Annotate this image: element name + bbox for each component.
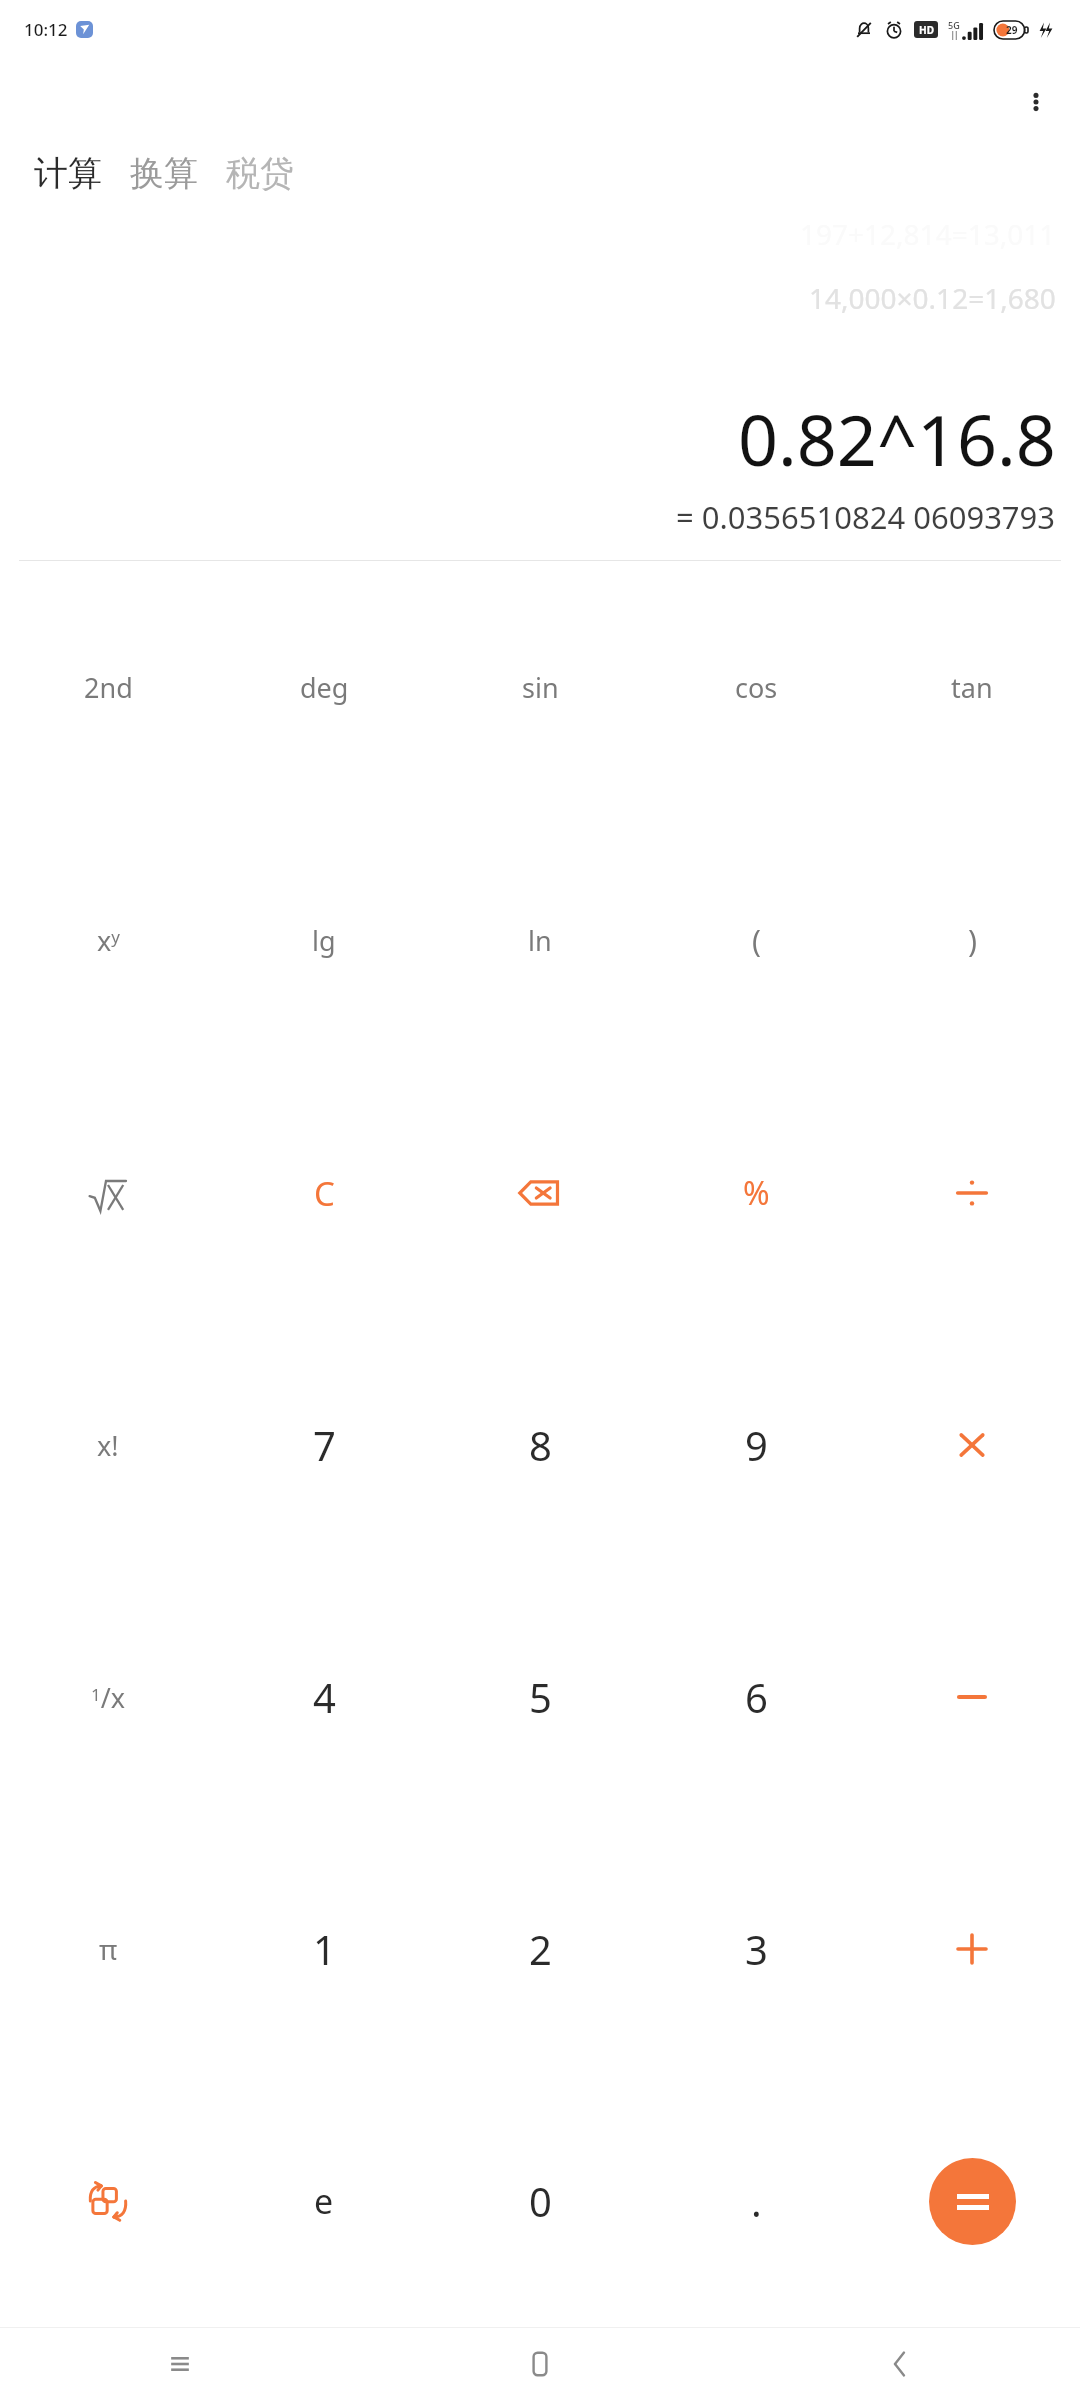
staticText: 5 — [529, 1670, 552, 1724]
button[interactable]: tan — [864, 561, 1080, 814]
button[interactable]: Home — [360, 2328, 720, 2400]
button[interactable]: Back — [720, 2328, 1080, 2400]
button[interactable]: 5 — [432, 1571, 648, 1823]
button[interactable]: ) — [864, 814, 1080, 1067]
staticText: 4 — [313, 1670, 336, 1724]
staticText: ( — [752, 920, 761, 961]
staticText: tan — [951, 669, 993, 706]
staticText: x! — [97, 1427, 119, 1464]
button[interactable]: ( — [648, 814, 864, 1067]
button[interactable] — [929, 2158, 1016, 2245]
button[interactable]: C — [216, 1067, 432, 1319]
button[interactable]: deg — [216, 561, 432, 814]
staticText: deg — [300, 669, 349, 706]
button[interactable]: 计算 — [24, 146, 112, 201]
staticText: . — [751, 2174, 762, 2228]
button[interactable]: π — [0, 1823, 216, 2075]
button[interactable]: x! — [0, 1319, 216, 1571]
button[interactable]: lg — [216, 814, 432, 1067]
button[interactable]: 2 — [432, 1823, 648, 2075]
staticText: π — [99, 1930, 118, 1968]
button[interactable]: More options — [1012, 78, 1060, 126]
staticText: 2 — [529, 1922, 552, 1976]
staticText: lg — [312, 922, 336, 959]
button[interactable]: . — [648, 2075, 864, 2327]
button[interactable]: Square root — [0, 1067, 216, 1319]
button[interactable]: 7 — [216, 1319, 432, 1571]
button[interactable]: 9 — [648, 1319, 864, 1571]
staticText: ) — [968, 920, 977, 961]
staticText: % — [743, 1171, 770, 1215]
staticText: xy — [97, 922, 120, 959]
button[interactable]: 1 — [216, 1823, 432, 2075]
button[interactable]: xy — [0, 814, 216, 1067]
staticText: 计算 — [34, 152, 102, 195]
button[interactable]: Backspace — [432, 1067, 648, 1319]
button[interactable]: Recents — [0, 2328, 360, 2400]
staticText: HD — [919, 23, 934, 37]
button[interactable]: sin — [432, 561, 648, 814]
staticText: 8 — [529, 1418, 552, 1472]
button[interactable]: % — [648, 1067, 864, 1319]
staticText: 10:12 — [24, 18, 68, 41]
button[interactable]: Add — [864, 1823, 1080, 2075]
button[interactable]: Equals — [864, 2075, 1080, 2327]
button[interactable]: Subtract — [864, 1571, 1080, 1823]
staticText: 0.82^16.8 — [738, 391, 1056, 486]
staticText: e — [314, 2178, 334, 2224]
staticText: 14,000×0.12=1,680 — [809, 279, 1056, 317]
staticText: 2nd — [84, 669, 133, 706]
staticText: 0 — [529, 2174, 552, 2228]
button[interactable]: 税贷 — [216, 146, 304, 201]
button[interactable]: ln — [432, 814, 648, 1067]
staticText: C — [314, 1171, 335, 1216]
staticText: = 0.0356510824 06093793 — [676, 496, 1056, 538]
staticText: 1/x — [91, 1679, 126, 1716]
staticText: 税贷 — [226, 152, 294, 195]
staticText: 1 — [313, 1922, 336, 1976]
button[interactable]: 6 — [648, 1571, 864, 1823]
button[interactable]: 4 — [216, 1571, 432, 1823]
button[interactable]: 8 — [432, 1319, 648, 1571]
staticText: 换算 — [130, 152, 198, 195]
button[interactable]: e — [216, 2075, 432, 2327]
button[interactable]: 3 — [648, 1823, 864, 2075]
button[interactable]: Divide — [864, 1067, 1080, 1319]
button[interactable]: Convert — [0, 2075, 216, 2327]
staticText: ln — [528, 922, 552, 959]
button[interactable]: cos — [648, 561, 864, 814]
staticText: 6 — [745, 1670, 768, 1724]
staticText: 9 — [745, 1418, 768, 1472]
staticText: sin — [522, 669, 559, 706]
staticText: 5G — [948, 19, 960, 31]
button[interactable]: Multiply — [864, 1319, 1080, 1571]
staticText: 3 — [745, 1922, 768, 1976]
button[interactable]: 2nd — [0, 561, 216, 814]
staticText: cos — [735, 669, 778, 706]
staticText: 7 — [313, 1418, 336, 1472]
staticText: 29 — [1006, 23, 1018, 37]
button[interactable]: 换算 — [120, 146, 208, 201]
button[interactable]: Reciprocal — [0, 1571, 216, 1823]
button[interactable]: 0 — [432, 2075, 648, 2327]
